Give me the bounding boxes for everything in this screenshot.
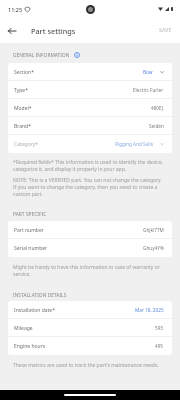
- button[interactable]: Part number: [8, 221, 172, 239]
- staticText: 11:25: [8, 6, 23, 13]
- button[interactable]: Back: [0, 19, 23, 42]
- staticText: These metrics are used to track the part…: [13, 362, 166, 369]
- staticText: Might be handy to have this information …: [13, 264, 166, 278]
- button[interactable]: Type*: [8, 81, 172, 99]
- staticText: Ghuy4Y%: [143, 245, 164, 251]
- staticText: Mar 18, 2025: [135, 307, 164, 313]
- button[interactable]: SAVE: [151, 22, 180, 39]
- staticText: Mileage: [14, 325, 33, 332]
- staticText: Section*: [14, 69, 34, 76]
- button[interactable]: Model*: [8, 99, 172, 117]
- staticText: 593: [155, 325, 164, 331]
- staticText: Serial number: [14, 245, 48, 252]
- button[interactable]: Brand*: [8, 117, 172, 135]
- staticText: Model*: [14, 105, 32, 112]
- staticText: NOTE: This is a VERIFIED part. You can n…: [13, 177, 166, 198]
- button[interactable]: Installation date*: [8, 301, 172, 319]
- staticText: Ghjkl77M: [143, 227, 164, 233]
- button[interactable]: Information: [74, 52, 80, 58]
- staticText: Seldén: [149, 123, 164, 129]
- staticText: SAVE: [159, 27, 172, 34]
- staticText: 495: [155, 343, 164, 349]
- staticText: GENERAL INFORMATION: [13, 52, 70, 59]
- staticText: Category*: [14, 141, 39, 148]
- button[interactable]: Engine hours: [8, 337, 172, 355]
- staticText: *Required fields* This information is us…: [13, 159, 166, 173]
- staticText: Installation date*: [14, 307, 55, 314]
- staticText: Type*: [14, 87, 28, 94]
- staticText: 480EJ: [151, 105, 164, 111]
- staticText: Part settings: [31, 26, 76, 36]
- staticText: Part number: [14, 227, 44, 234]
- button[interactable]: Serial number: [8, 239, 172, 257]
- button[interactable]: Section*: [8, 63, 172, 81]
- staticText: Electric Furler: [133, 87, 164, 93]
- button[interactable]: Category*: [8, 135, 172, 153]
- staticText: INSTALLATION DETAILS: [13, 292, 67, 299]
- staticText: Rigging And Sails: [115, 141, 153, 147]
- staticText: Engine hours: [14, 343, 46, 350]
- staticText: Bow: [143, 69, 153, 75]
- button[interactable]: Mileage: [8, 319, 172, 337]
- staticText: PART SPECIFIC: [13, 211, 47, 218]
- staticText: Brand*: [14, 123, 31, 130]
